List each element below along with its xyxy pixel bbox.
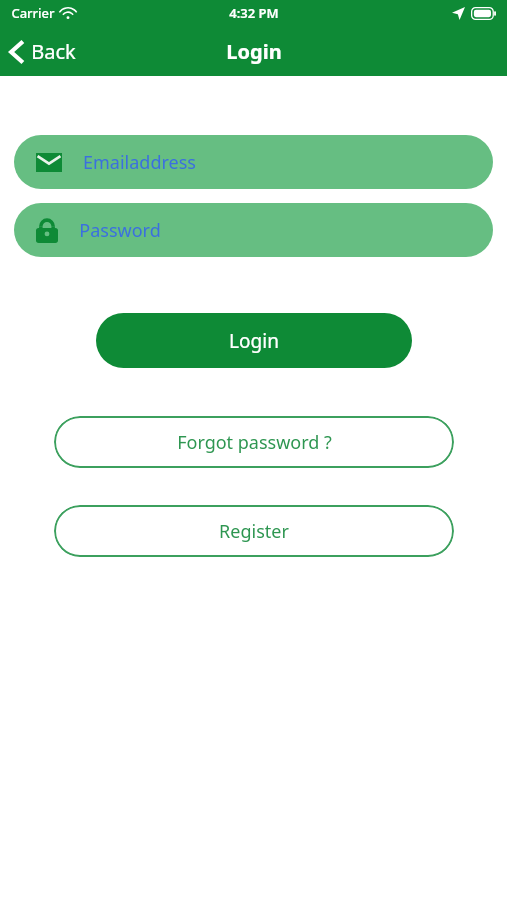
other: Back	[10, 40, 24, 64]
staticText: 4:32 PM	[229, 4, 279, 22]
other: Email	[36, 153, 62, 172]
staticText: Login	[226, 38, 282, 65]
staticText: Emailaddress	[83, 150, 196, 175]
staticText: Login	[229, 328, 279, 354]
button[interactable]: Login	[96, 313, 412, 368]
button[interactable]: Email	[14, 135, 493, 189]
button[interactable]: Forgot password ?	[54, 416, 454, 468]
staticText: Carrier	[11, 4, 55, 22]
staticText: Forgot password ?	[177, 430, 332, 455]
button[interactable]: Back	[0, 32, 88, 71]
button[interactable]: Register	[54, 505, 454, 557]
staticText: Register	[219, 519, 289, 544]
staticText: Back	[31, 38, 76, 65]
other: Password	[36, 217, 58, 243]
staticText: Password	[79, 218, 161, 243]
button[interactable]: Password	[14, 203, 493, 257]
